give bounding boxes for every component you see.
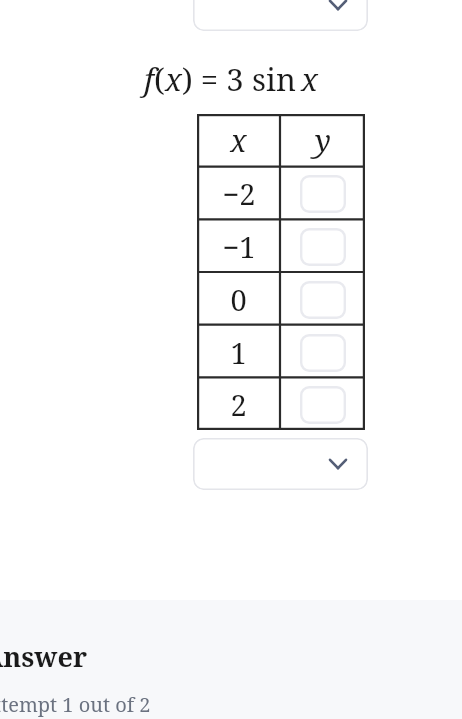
staticText: 2 (230, 385, 247, 424)
staticText: f (144, 58, 154, 100)
button[interactable]: Select function option (193, 0, 368, 31)
staticText: x (165, 58, 182, 100)
staticText: ( (154, 58, 165, 100)
staticText: y (315, 120, 331, 161)
staticText: Attempt 1 out of 2 (0, 691, 151, 718)
staticText: Answer (0, 638, 88, 675)
button[interactable]: Answer input (300, 334, 346, 372)
staticText: −2 (222, 174, 256, 213)
staticText: sin (252, 58, 296, 100)
button[interactable]: Answer input (300, 281, 346, 319)
staticText: x (301, 58, 318, 100)
button[interactable]: Answer input (300, 386, 346, 424)
staticText: ) = 3 (182, 58, 252, 100)
button[interactable]: Answer input (300, 228, 346, 266)
staticText: 1 (230, 333, 247, 372)
staticText: x (230, 120, 247, 161)
button[interactable]: Answer input (300, 175, 346, 213)
staticText: 0 (230, 280, 247, 319)
button[interactable]: Select answer option (193, 438, 368, 490)
staticText: −1 (222, 227, 256, 266)
